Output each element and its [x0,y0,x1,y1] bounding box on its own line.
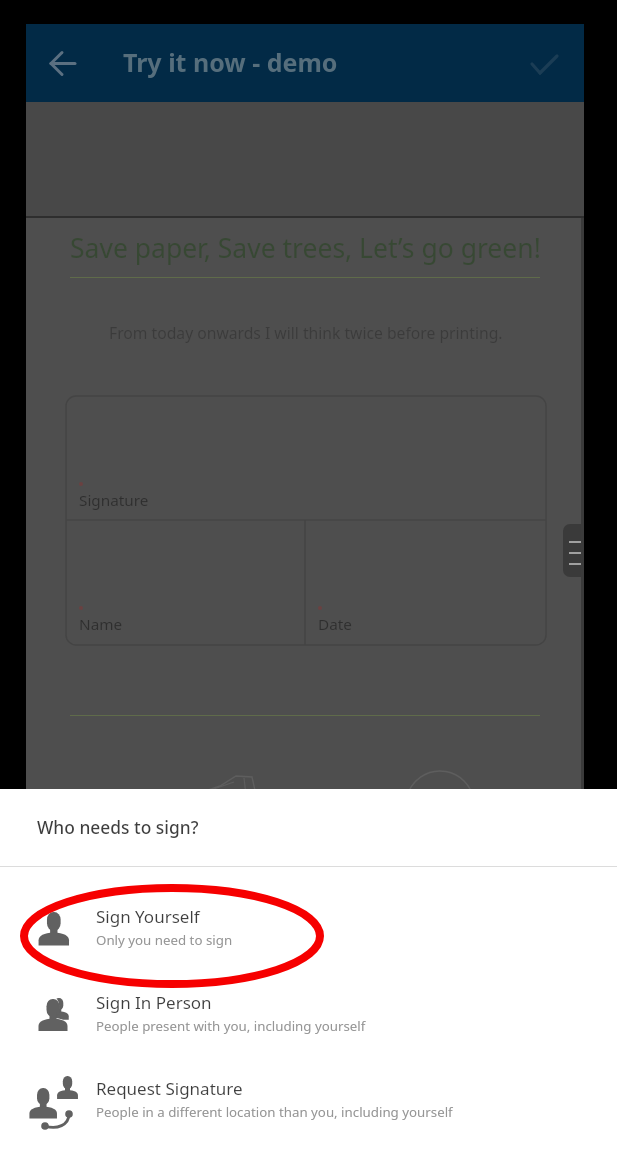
button[interactable]: Sign In Person [0,972,617,1058]
button[interactable]: Back [38,39,86,87]
staticText: Name [79,614,123,635]
staticText: People in a different location than you,… [96,1103,453,1121]
button[interactable]: Request Signature [0,1058,617,1144]
staticText: From today onwards I will think twice be… [109,322,503,343]
staticText: Try it now - demo [123,45,338,79]
staticText: Save paper, Save trees, Let’s go green! [70,230,541,266]
button[interactable]: Menu [563,524,584,577]
staticText: Who needs to sign? [37,815,199,839]
staticText: Sign Yourself [96,905,200,928]
button[interactable]: Sign Yourself [0,886,617,972]
staticText: People present with you, including yours… [96,1017,366,1035]
button[interactable]: Done [522,39,570,87]
staticText: Date [318,614,352,635]
staticText: Request Signature [96,1077,243,1100]
staticText: Only you need to sign [96,931,233,949]
staticText: Signature [79,490,149,511]
staticText: Sign In Person [96,991,212,1014]
